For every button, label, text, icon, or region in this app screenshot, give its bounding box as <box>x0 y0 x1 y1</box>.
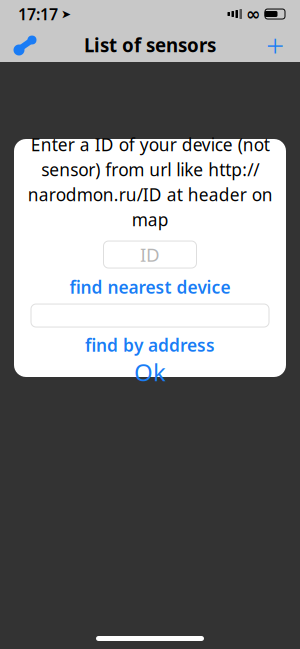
staticText: find by address <box>85 333 215 356</box>
staticText: 17:17 <box>18 3 58 25</box>
button[interactable] <box>31 304 269 327</box>
button[interactable]: ID <box>103 241 196 268</box>
staticText: ID <box>140 242 160 267</box>
staticText: Ok <box>134 356 166 388</box>
button[interactable]: find by address <box>85 335 215 355</box>
button[interactable]: Ok <box>134 360 166 384</box>
staticText: find nearest device <box>69 275 230 298</box>
staticText: ∞ <box>246 4 260 24</box>
staticText: + <box>266 24 284 66</box>
staticText: List of sensors <box>84 33 216 57</box>
button[interactable]: Add sensor <box>256 28 294 62</box>
staticText: ➤ <box>61 7 71 21</box>
button[interactable]: find nearest device <box>69 277 230 297</box>
button[interactable]: Connection status <box>6 28 44 62</box>
staticText: Enter a ID of your device (not sensor) f… <box>27 133 272 231</box>
